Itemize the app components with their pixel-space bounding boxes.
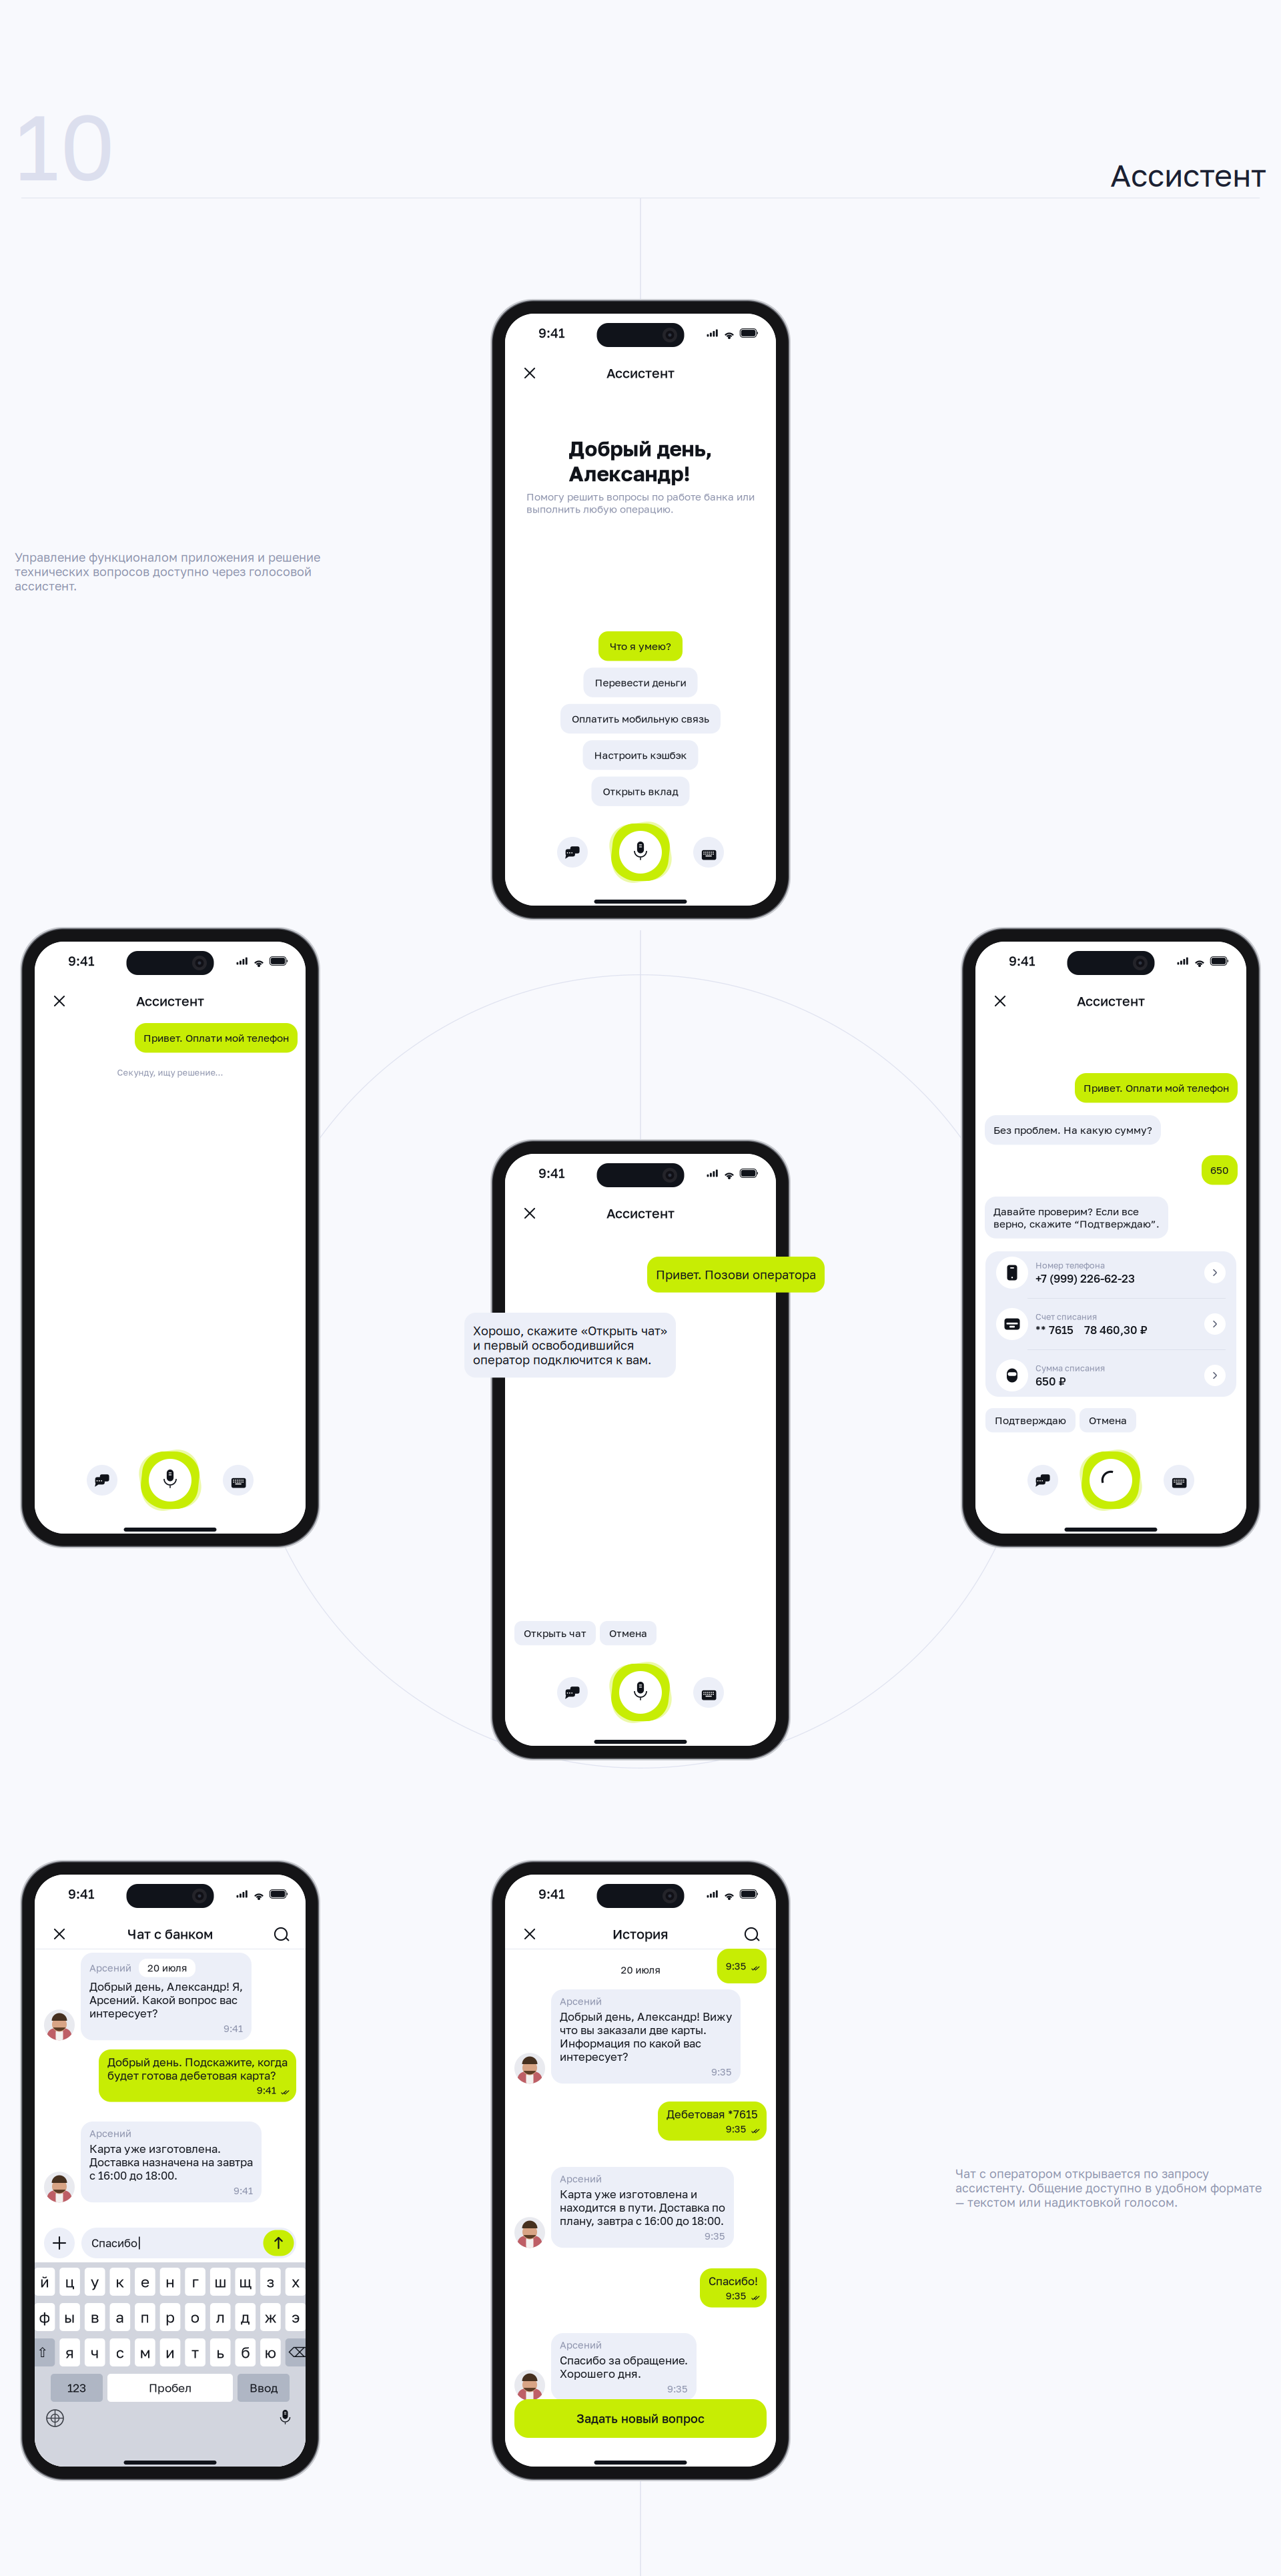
button[interactable]: Закрыть bbox=[47, 989, 71, 1013]
button[interactable]: б bbox=[235, 2338, 256, 2366]
button[interactable]: р bbox=[160, 2303, 180, 2331]
staticText: и bbox=[165, 2343, 175, 2362]
staticText: Добрый день, Александр! bbox=[569, 436, 712, 486]
button[interactable]: Чат bbox=[1027, 1465, 1058, 1496]
staticText: р bbox=[165, 2308, 175, 2326]
button[interactable]: Чат bbox=[87, 1465, 117, 1496]
button[interactable]: Клавиатура bbox=[1164, 1465, 1194, 1496]
button[interactable]: н bbox=[160, 2268, 180, 2296]
button[interactable]: ⌫ bbox=[285, 2338, 310, 2366]
button[interactable]: Номер телефона bbox=[985, 1247, 1236, 1298]
button[interactable]: Отмена bbox=[1080, 1408, 1136, 1432]
button[interactable]: 123 bbox=[51, 2374, 103, 2402]
button[interactable]: ю bbox=[260, 2338, 281, 2366]
button[interactable]: Перевести деньги bbox=[583, 668, 698, 697]
button[interactable]: Закрыть bbox=[518, 361, 542, 385]
button[interactable]: ж bbox=[260, 2303, 281, 2331]
staticText: 123 bbox=[67, 2381, 86, 2395]
button[interactable]: Настроить кэшбэк bbox=[583, 740, 698, 770]
button[interactable]: д bbox=[235, 2303, 256, 2331]
staticText: Открыть чат bbox=[524, 1627, 586, 1639]
button[interactable]: г bbox=[185, 2268, 205, 2296]
button[interactable]: Открыть вклад bbox=[591, 777, 690, 806]
button[interactable]: ф bbox=[34, 2303, 55, 2331]
staticText: з bbox=[266, 2273, 274, 2291]
button[interactable]: Ввод bbox=[238, 2374, 290, 2402]
button[interactable]: Закрыть bbox=[988, 989, 1012, 1013]
button[interactable]: Сменить язык bbox=[47, 2410, 63, 2427]
button[interactable]: Подтверждаю bbox=[985, 1408, 1076, 1432]
button[interactable]: м bbox=[135, 2338, 155, 2366]
button[interactable]: з bbox=[260, 2268, 281, 2296]
staticText: 9:35 bbox=[711, 2066, 732, 2078]
staticText: ы bbox=[64, 2308, 75, 2326]
button[interactable]: х bbox=[285, 2268, 306, 2296]
button[interactable]: ы bbox=[60, 2303, 80, 2331]
button[interactable]: ь bbox=[210, 2338, 231, 2366]
button[interactable]: т bbox=[185, 2338, 205, 2366]
button[interactable]: с bbox=[110, 2338, 130, 2366]
staticText: Привет. Оплати мой телефон bbox=[1084, 1082, 1229, 1094]
button[interactable]: Закрыть bbox=[518, 1922, 542, 1946]
staticText: Карта уже изготовлена и находится в пути… bbox=[560, 2187, 725, 2227]
button[interactable]: Пробел bbox=[107, 2374, 233, 2402]
button[interactable]: Отправить bbox=[263, 2230, 294, 2256]
button[interactable]: Поиск bbox=[739, 1922, 763, 1946]
button[interactable]: Сумма списания bbox=[985, 1350, 1236, 1401]
button[interactable]: Диктовка bbox=[277, 2410, 294, 2427]
button[interactable]: Микрофон bbox=[610, 822, 671, 882]
button[interactable]: Оплатить мобильную связь bbox=[560, 704, 721, 734]
button[interactable]: й bbox=[34, 2268, 55, 2296]
button[interactable]: Обработка bbox=[1081, 1450, 1141, 1510]
button[interactable]: Микрофон bbox=[610, 1662, 671, 1722]
button[interactable]: Поиск bbox=[269, 1922, 293, 1946]
staticText: Спасибо за обращение. Хорошего дня. bbox=[560, 2354, 688, 2380]
button[interactable]: а bbox=[110, 2303, 130, 2331]
button[interactable]: Закрыть bbox=[47, 1922, 71, 1946]
button[interactable]: Чат bbox=[557, 1677, 588, 1708]
button[interactable]: Клавиатура bbox=[223, 1465, 254, 1496]
staticText: Перевести деньги bbox=[595, 676, 686, 689]
button[interactable]: ц bbox=[60, 2268, 80, 2296]
staticText: 20 июля bbox=[147, 1962, 187, 1974]
button[interactable]: и bbox=[160, 2338, 180, 2366]
button[interactable]: е bbox=[135, 2268, 155, 2296]
button[interactable]: Клавиатура bbox=[693, 837, 724, 868]
staticText: о bbox=[191, 2308, 200, 2326]
staticText: в bbox=[91, 2308, 99, 2326]
button[interactable]: в bbox=[85, 2303, 105, 2331]
button[interactable]: Закрыть bbox=[518, 1201, 542, 1225]
button[interactable]: Что я умею? bbox=[598, 631, 683, 661]
button[interactable]: Задать новый вопрос bbox=[514, 2399, 767, 2438]
staticText: ц bbox=[65, 2273, 74, 2291]
button[interactable]: я bbox=[60, 2338, 80, 2366]
button[interactable]: о bbox=[185, 2303, 205, 2331]
staticText: Арсений bbox=[560, 1995, 602, 2007]
button[interactable]: э bbox=[285, 2303, 306, 2331]
staticText: г bbox=[192, 2273, 199, 2291]
button[interactable]: Прикрепить bbox=[44, 2228, 75, 2258]
button[interactable]: ⇧ bbox=[30, 2338, 55, 2366]
button[interactable]: Клавиатура bbox=[693, 1677, 724, 1708]
button[interactable]: л bbox=[210, 2303, 231, 2331]
button[interactable]: Счет списания bbox=[985, 1299, 1236, 1349]
staticText: ⌫ bbox=[288, 2345, 307, 2360]
button[interactable]: у bbox=[85, 2268, 105, 2296]
button[interactable]: к bbox=[110, 2268, 130, 2296]
staticText: Ассистент bbox=[136, 993, 204, 1009]
button[interactable]: Отмена bbox=[600, 1621, 657, 1645]
staticText: 9:35 bbox=[726, 1960, 746, 1972]
button[interactable]: ш bbox=[210, 2268, 231, 2296]
staticText: Ассистент bbox=[606, 365, 675, 381]
staticText: Пробел bbox=[149, 2381, 191, 2395]
button[interactable]: ч bbox=[85, 2338, 105, 2366]
staticText: 9:35 bbox=[726, 2290, 746, 2301]
button[interactable]: Чат bbox=[557, 837, 588, 868]
button[interactable]: щ bbox=[235, 2268, 256, 2296]
button[interactable]: Открыть чат bbox=[514, 1621, 596, 1645]
button[interactable]: п bbox=[135, 2303, 155, 2331]
staticText: Добрый день, Александр! Я, Арсений. Како… bbox=[89, 1980, 243, 2020]
staticText: е bbox=[141, 2273, 149, 2291]
button[interactable]: Микрофон bbox=[140, 1450, 200, 1510]
staticText: 9:35 bbox=[667, 2383, 688, 2395]
